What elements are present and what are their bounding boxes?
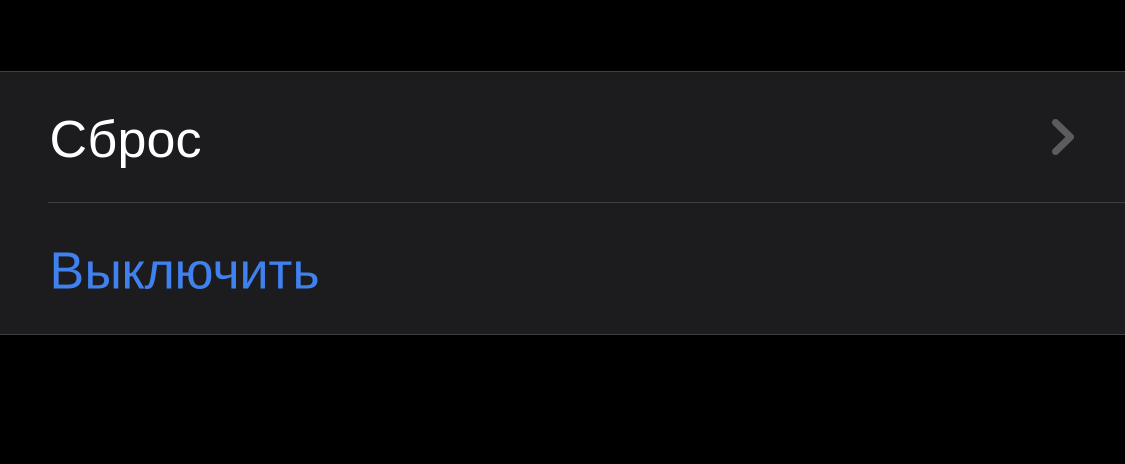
staticText: Выключить [49,241,319,300]
button[interactable]: Выключить [0,203,1125,334]
staticText: Сброс [49,110,201,168]
button[interactable]: Сброс [0,72,1125,202]
